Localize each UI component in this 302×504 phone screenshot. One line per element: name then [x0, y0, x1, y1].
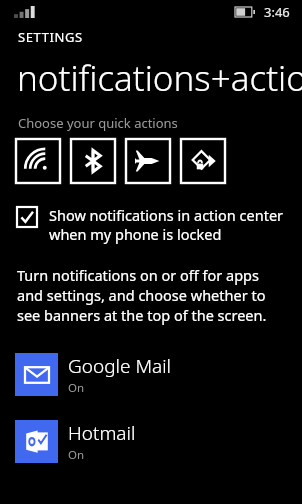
staticText: Google Mail: [68, 353, 171, 379]
button[interactable]: Google Mail: [0, 353, 302, 396]
button[interactable]: Rotation lock quick action: [181, 139, 225, 183]
staticText: Turn notifications on or off for apps an…: [17, 265, 280, 325]
staticText: Hotmail: [68, 420, 136, 446]
button[interactable]: Show notifications in action center when…: [0, 205, 302, 244]
button[interactable]: Hotmail: [0, 420, 302, 463]
staticText: Show notifications in action center when…: [49, 205, 290, 244]
staticText: SETTINGS: [18, 28, 83, 46]
staticText: Choose your quick actions: [18, 114, 178, 132]
button[interactable]: Airplane mode quick action: [126, 139, 170, 183]
staticText: On: [68, 380, 85, 396]
staticText: notifications+actions: [17, 54, 302, 102]
staticText: On: [68, 447, 85, 463]
button[interactable]: Bluetooth quick action: [71, 139, 115, 183]
button[interactable]: Wi-Fi quick action: [16, 139, 60, 183]
staticText: 3:46: [264, 3, 290, 21]
